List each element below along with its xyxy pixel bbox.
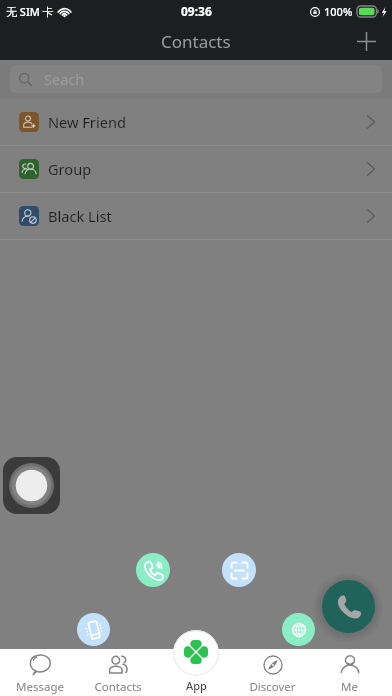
staticText: Contacts	[94, 679, 142, 695]
button[interactable]: Me	[311, 649, 388, 696]
button[interactable]: Call	[136, 553, 170, 587]
button[interactable]: New Friend	[0, 99, 392, 145]
staticText: 09:36	[181, 3, 212, 19]
button[interactable]: Web	[282, 613, 315, 646]
button[interactable]: Group	[0, 146, 392, 192]
staticText: Black List	[48, 206, 112, 226]
button[interactable]: Black List	[0, 193, 392, 239]
button[interactable]: Contacts	[79, 649, 157, 696]
staticText: Contacts	[161, 30, 231, 53]
staticText: Message	[16, 679, 64, 695]
staticText: Discover	[249, 679, 296, 695]
button[interactable]: AssistiveTouch	[3, 457, 60, 514]
button[interactable]: Discover	[234, 649, 311, 696]
button[interactable]: Scan	[222, 553, 256, 587]
staticText: App	[186, 678, 207, 693]
staticText: Me	[341, 679, 358, 695]
staticText: Group	[48, 159, 92, 179]
staticText: 100%	[324, 4, 353, 19]
button[interactable]: Message	[1, 649, 79, 696]
staticText: 无 SIM 卡	[6, 4, 54, 19]
button[interactable]: Shake	[77, 613, 110, 646]
button[interactable]	[173, 630, 219, 676]
staticText: Seach	[44, 69, 85, 89]
button[interactable]: Call	[322, 580, 375, 633]
staticText: New Friend	[48, 112, 126, 132]
button[interactable]: Add contact	[349, 24, 383, 58]
